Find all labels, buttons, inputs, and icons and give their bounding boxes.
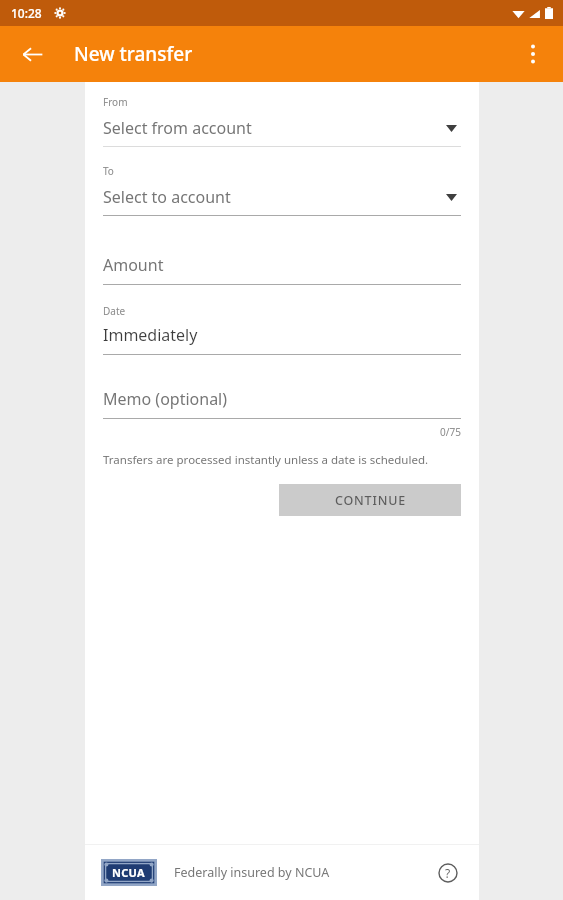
staticText: Federally insured by NCUA	[174, 864, 330, 881]
staticText: Memo (optional)	[103, 388, 228, 410]
button[interactable]: Back	[10, 32, 54, 76]
button[interactable]: Immediately	[103, 324, 461, 355]
button[interactable]: CONTINUE	[279, 484, 461, 516]
staticText: To	[103, 164, 114, 178]
staticText: Select from account	[103, 117, 252, 139]
staticText: From	[103, 95, 128, 109]
button[interactable]: Memo (optional)	[103, 388, 461, 419]
button[interactable]: More options	[511, 32, 555, 76]
button[interactable]: Select from account	[103, 117, 461, 147]
button[interactable]: Amount	[103, 254, 461, 285]
staticText: Transfers are processed instantly unless…	[103, 452, 429, 468]
staticText: CONTINUE	[335, 492, 406, 509]
staticText: Amount	[103, 254, 164, 276]
staticText: 0/75	[103, 425, 461, 439]
staticText: Date	[103, 304, 126, 318]
staticText: NCUA	[112, 865, 146, 880]
staticText: Select to account	[103, 186, 231, 208]
staticText: ?	[445, 865, 451, 881]
button[interactable]: Help	[433, 858, 463, 888]
staticText: New transfer	[74, 41, 193, 67]
staticText: Immediately	[103, 324, 198, 346]
button[interactable]: NCUA	[101, 859, 157, 886]
button[interactable]: Select to account	[103, 186, 461, 216]
staticText: 10:28	[11, 5, 42, 21]
